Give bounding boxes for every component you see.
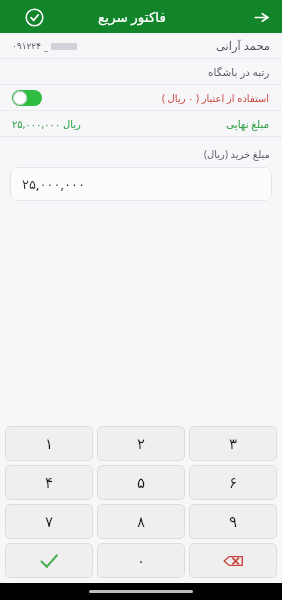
button[interactable]: ۰۹۱۲۲۴ [0, 33, 282, 58]
button[interactable]: ۶ [189, 465, 277, 500]
staticText: استفاده از اعتبار ( ۰ ریال ) [162, 91, 270, 105]
button[interactable]: Backspace [189, 543, 277, 578]
button[interactable]: Accept [5, 543, 93, 578]
button[interactable]: ۱ [5, 426, 93, 461]
staticText: ۰ [137, 552, 146, 569]
button[interactable]: ۲۵,۰۰۰,۰۰۰ [10, 167, 272, 201]
staticText: _ [44, 40, 48, 52]
button[interactable]: Use credit toggle [12, 90, 42, 106]
staticText: مبلغ خرید (ریال) [204, 147, 270, 161]
button[interactable]: ۲۵,۰۰۰,۰۰۰ ریال [0, 111, 282, 136]
button[interactable]: ۸ [97, 504, 185, 539]
staticText: ۴ [45, 474, 54, 491]
staticText: ۷ [45, 513, 54, 530]
staticText: ۲۵,۰۰۰,۰۰۰ ریال [12, 117, 81, 131]
staticText: فاکتور سریع [98, 8, 166, 26]
button[interactable]: ۰ [97, 543, 185, 578]
button[interactable]: ۳ [189, 426, 277, 461]
staticText: ۲۵,۰۰۰,۰۰۰ [22, 175, 85, 193]
button[interactable]: ۹ [189, 504, 277, 539]
staticText: ۲ [137, 435, 146, 452]
staticText: ۰۹۱۲۲۴ [12, 41, 42, 51]
button[interactable]: Use credit toggle [0, 85, 282, 110]
staticText: ۳ [229, 435, 238, 452]
staticText: ۸ [137, 513, 146, 530]
staticText: ۶ [229, 474, 238, 491]
button[interactable]: Confirm [22, 5, 46, 29]
button[interactable]: ۵ [97, 465, 185, 500]
staticText: ۵ [137, 474, 146, 491]
button[interactable]: ۲ [97, 426, 185, 461]
staticText: رتبه در باشگاه [208, 65, 270, 79]
button[interactable]: Next [248, 4, 274, 30]
button[interactable]: رتبه در باشگاه [0, 59, 282, 84]
button[interactable]: ۴ [5, 465, 93, 500]
staticText: ۹ [229, 513, 238, 530]
staticText: ۱ [45, 435, 54, 452]
staticText: محمد آرانی [216, 38, 270, 54]
staticText: مبلغ نهایی [226, 117, 270, 131]
button[interactable]: ۷ [5, 504, 93, 539]
